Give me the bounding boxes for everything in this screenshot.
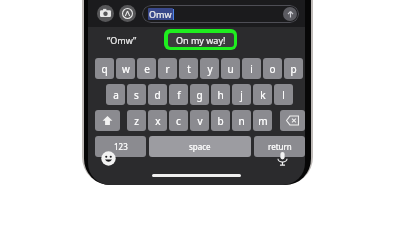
staticText: z: [134, 114, 139, 128]
staticText: b: [217, 114, 224, 128]
staticText: d: [154, 88, 161, 102]
button[interactable]: Omw: [142, 5, 299, 23]
staticText: l: [282, 88, 285, 102]
staticText: g: [196, 88, 203, 102]
staticText: return: [268, 141, 292, 152]
button[interactable]: Shift: [95, 110, 120, 131]
staticText: h: [217, 88, 224, 102]
button[interactable]: a: [106, 84, 125, 105]
staticText: On my way!: [176, 34, 226, 46]
button[interactable]: On my way!: [164, 29, 237, 50]
staticText: j: [240, 88, 243, 102]
button[interactable]: m: [253, 110, 272, 131]
staticText: f: [177, 88, 181, 102]
staticText: space: [189, 141, 211, 152]
button[interactable]: return: [254, 136, 305, 157]
staticText: y: [207, 62, 213, 76]
button[interactable]: z: [127, 110, 146, 131]
staticText: s: [134, 88, 139, 102]
button[interactable]: n: [232, 110, 251, 131]
staticText: r: [165, 62, 170, 76]
button[interactable]: Send: [283, 7, 297, 21]
staticText: x: [155, 114, 161, 128]
button[interactable]: o: [263, 58, 282, 79]
staticText: 123: [114, 141, 128, 152]
button[interactable]: Emoji: [100, 150, 117, 167]
button[interactable]: Dictation: [274, 150, 291, 167]
staticText: e: [144, 62, 150, 76]
button[interactable]: i: [242, 58, 261, 79]
staticText: i: [250, 62, 253, 76]
staticText: n: [238, 114, 245, 128]
button[interactable]: x: [148, 110, 167, 131]
button[interactable]: e: [137, 58, 156, 79]
button[interactable]: d: [148, 84, 167, 105]
staticText: o: [269, 62, 276, 76]
button[interactable]: k: [253, 84, 272, 105]
button[interactable]: c: [169, 110, 188, 131]
staticText: t: [187, 62, 191, 76]
button[interactable]: q: [95, 58, 114, 79]
staticText: v: [197, 114, 203, 128]
button[interactable]: p: [284, 58, 303, 79]
button[interactable]: Backspace: [280, 110, 305, 131]
button[interactable]: u: [221, 58, 240, 79]
button[interactable]: f: [169, 84, 188, 105]
button[interactable]: j: [232, 84, 251, 105]
button[interactable]: t: [179, 58, 198, 79]
staticText: k: [260, 88, 266, 102]
button[interactable]: v: [190, 110, 209, 131]
button[interactable]: r: [158, 58, 177, 79]
staticText: a: [113, 88, 119, 102]
button[interactable]: Camera: [97, 5, 114, 22]
staticText: w: [122, 62, 130, 76]
button[interactable]: space: [149, 136, 251, 157]
button[interactable]: g: [190, 84, 209, 105]
staticText: p: [290, 62, 297, 76]
button[interactable]: 123: [95, 136, 146, 157]
button[interactable]: h: [211, 84, 230, 105]
button[interactable]: w: [116, 58, 135, 79]
button[interactable]: s: [127, 84, 146, 105]
staticText: Omw: [149, 8, 172, 20]
staticText: c: [176, 114, 181, 128]
staticText: m: [258, 114, 268, 128]
button[interactable]: y: [200, 58, 219, 79]
button[interactable]: Apps: [119, 5, 136, 22]
staticText: u: [227, 62, 234, 76]
button[interactable]: l: [274, 84, 293, 105]
staticText: q: [101, 62, 108, 76]
button[interactable]: b: [211, 110, 230, 131]
button[interactable]: “Omw”: [107, 34, 137, 46]
